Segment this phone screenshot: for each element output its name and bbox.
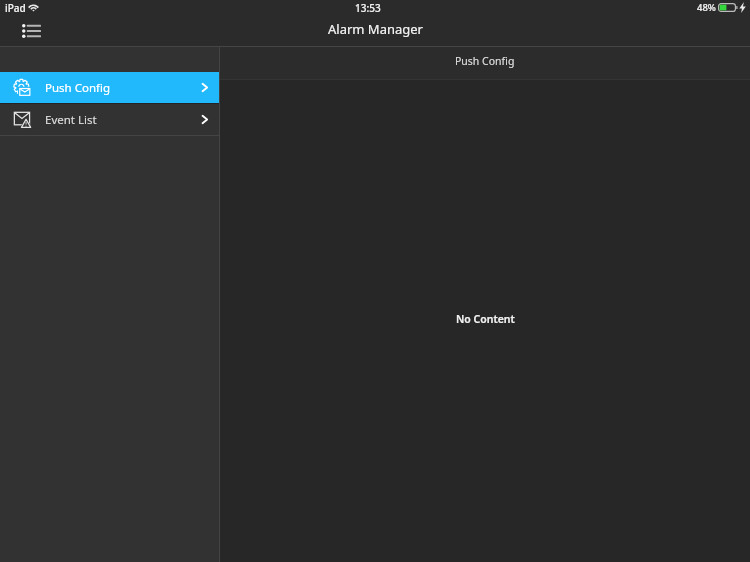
button[interactable]: Menu xyxy=(13,19,49,43)
button[interactable]: Push Config xyxy=(0,72,219,103)
staticText: Push Config xyxy=(455,54,515,68)
staticText: Push Config xyxy=(45,80,110,96)
staticText: Event List xyxy=(45,112,97,128)
staticText: No Content xyxy=(456,312,515,326)
staticText: 48% xyxy=(697,1,716,14)
staticText: Alarm Manager xyxy=(328,20,423,38)
staticText: 13:53 xyxy=(355,1,381,15)
button[interactable]: Event List xyxy=(0,104,219,135)
staticText: iPad xyxy=(5,1,26,15)
